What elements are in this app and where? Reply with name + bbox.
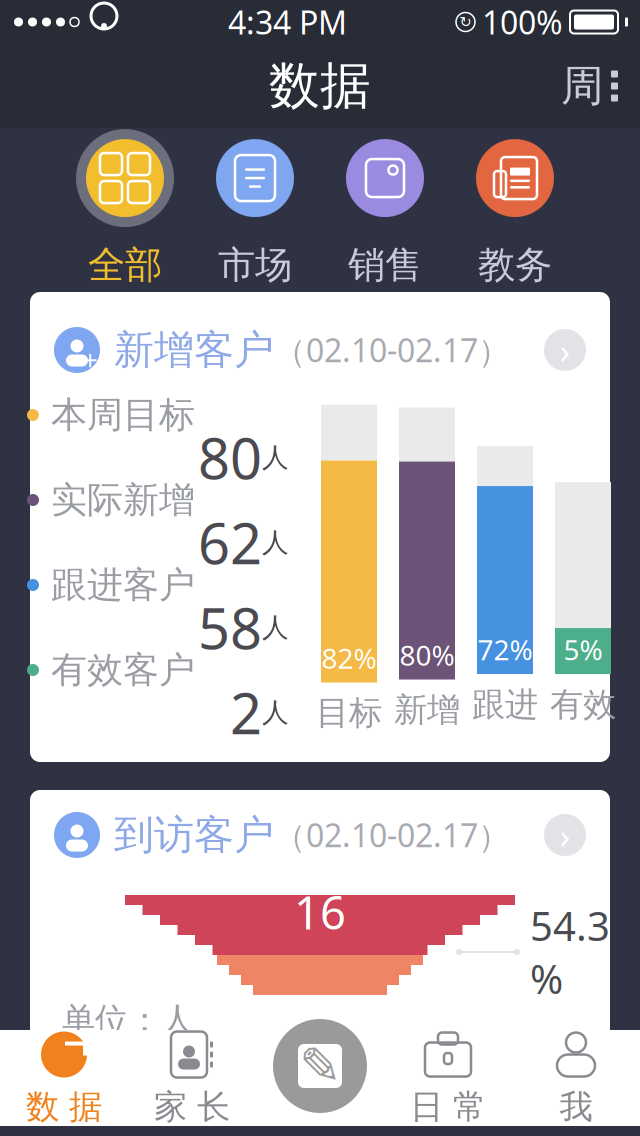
button[interactable]: 数 据	[0, 1030, 128, 1126]
staticText: 数据	[269, 55, 371, 117]
staticText: 到访客户	[114, 810, 274, 859]
staticText: 销售	[348, 242, 422, 288]
staticText: 有效	[550, 684, 616, 725]
staticText: 跟进	[472, 684, 538, 725]
button[interactable]: 周 切换周期	[547, 50, 632, 122]
staticText: 80	[198, 420, 262, 495]
button[interactable]: 查看详情	[536, 804, 594, 866]
staticText: 教务	[478, 242, 552, 288]
staticText: ↻	[459, 14, 471, 30]
staticText: 周	[561, 60, 604, 112]
staticText: 市场	[218, 242, 292, 288]
button[interactable]: 家 长	[128, 1030, 256, 1126]
staticText: 人	[262, 696, 289, 729]
button[interactable]: 教务	[450, 128, 580, 288]
staticText: 5%	[563, 631, 602, 668]
staticText: 有效客户	[51, 648, 195, 692]
staticText: 62	[198, 505, 262, 580]
staticText: 日 常	[410, 1086, 486, 1127]
staticText: ›	[559, 327, 570, 373]
staticText: 单位：人	[62, 999, 194, 1040]
staticText: 人	[262, 441, 289, 474]
button[interactable]: 我	[512, 1030, 640, 1126]
staticText: ›	[559, 812, 570, 858]
staticText: 本周目标	[51, 393, 195, 437]
staticText: 数 据	[26, 1086, 102, 1127]
button[interactable]: 销售	[320, 128, 450, 288]
staticText: 人	[262, 611, 289, 644]
staticText: 全部	[88, 242, 162, 288]
staticText: 80%	[399, 636, 454, 673]
staticText: 目标	[316, 692, 382, 733]
staticText: 新增客户	[114, 325, 274, 374]
staticText: 实际新增	[51, 478, 195, 522]
staticText: 72%	[477, 631, 532, 668]
staticText: 58	[198, 590, 262, 665]
staticText: 跟进客户	[51, 563, 195, 607]
staticText: 54.3%	[530, 899, 610, 1005]
button[interactable]: 查看详情	[536, 319, 594, 381]
staticText: 家 长	[154, 1086, 230, 1127]
staticText: （02.10-02.17）	[274, 814, 510, 856]
button[interactable]: 全部	[60, 128, 190, 288]
staticText: 我	[559, 1086, 592, 1127]
staticText: 100%	[482, 1, 563, 43]
staticText: （02.10-02.17）	[274, 329, 510, 371]
staticText: 人	[262, 526, 289, 559]
staticText: 82%	[321, 639, 376, 676]
staticText: 新增	[394, 689, 460, 730]
button[interactable]: 市场	[190, 128, 320, 288]
staticText: 4:34 PM	[228, 1, 347, 43]
staticText: 16	[294, 882, 346, 942]
button[interactable]: 日 常	[384, 1030, 512, 1126]
staticText: +	[82, 342, 97, 378]
staticText: ✎	[299, 1037, 341, 1095]
staticText: 2	[230, 675, 262, 750]
button[interactable]: 新建	[273, 1019, 367, 1113]
